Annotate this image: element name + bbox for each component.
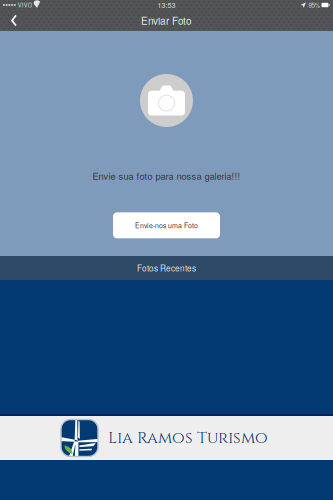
staticText: Enviar Foto: [141, 13, 192, 28]
staticText: Fotos Recentes: [137, 262, 196, 274]
staticText: 13:53: [157, 0, 175, 10]
staticText: VIVO: [18, 1, 32, 9]
staticText: Lia Ramos Turismo: [108, 427, 268, 449]
button[interactable]: Envie-nos uma Foto: [113, 212, 220, 238]
staticText: Envie-nos uma Foto: [135, 220, 198, 230]
button[interactable]: Back: [0, 11, 26, 29]
staticText: Envie sua foto para nossa galeria!!!: [92, 169, 240, 182]
staticText: 95%: [308, 1, 319, 9]
